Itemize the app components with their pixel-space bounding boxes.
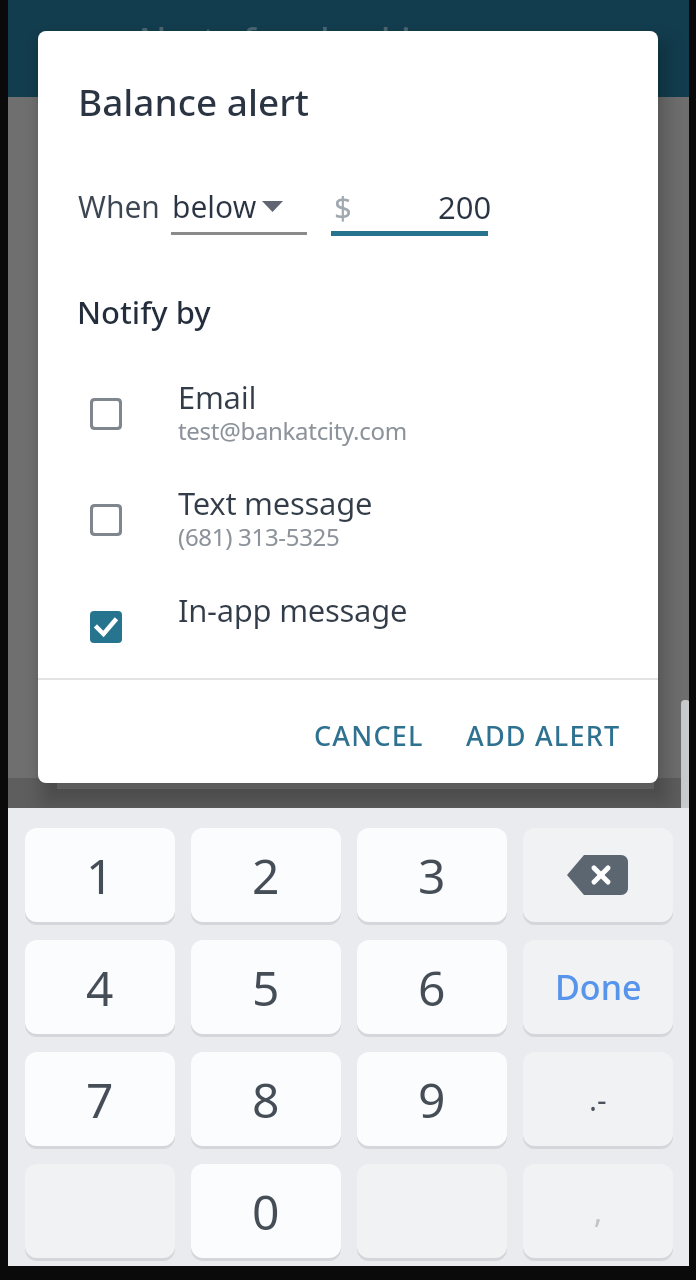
button[interactable]: In-app message bbox=[78, 597, 638, 687]
staticText: 5 bbox=[252, 955, 280, 1020]
staticText: test@bankatcity.com bbox=[178, 414, 407, 447]
button[interactable]: $ bbox=[331, 171, 488, 231]
staticText: 7 bbox=[86, 1067, 114, 1132]
button[interactable]: CANCEL bbox=[293, 713, 445, 757]
button[interactable]: 1 bbox=[25, 828, 175, 922]
staticText: Email bbox=[178, 376, 257, 418]
staticText: (681) 313-5325 bbox=[178, 520, 340, 553]
button[interactable]: .- bbox=[523, 1052, 673, 1146]
button[interactable]: Email bbox=[78, 384, 638, 474]
staticText: ADD ALERT bbox=[466, 717, 621, 754]
button[interactable]: Done bbox=[523, 940, 673, 1034]
staticText: Notify by bbox=[77, 291, 211, 333]
staticText: 3 bbox=[418, 843, 446, 908]
button[interactable]: below bbox=[166, 171, 316, 233]
staticText: In-app message bbox=[178, 589, 408, 631]
staticText: $ bbox=[334, 186, 352, 228]
button[interactable]: 2 bbox=[191, 828, 341, 922]
button[interactable]: 9 bbox=[357, 1052, 507, 1146]
button[interactable]: 7 bbox=[25, 1052, 175, 1146]
staticText: 8 bbox=[252, 1067, 280, 1132]
staticText: Done bbox=[555, 964, 642, 1010]
button[interactable]: ADD ALERT bbox=[443, 713, 643, 757]
button[interactable]: 4 bbox=[25, 940, 175, 1034]
staticText: Text message bbox=[178, 482, 373, 524]
button[interactable]: Text message bbox=[78, 490, 638, 580]
staticText: 9 bbox=[418, 1067, 446, 1132]
staticText: 2 bbox=[252, 843, 280, 908]
staticText: Balance alert bbox=[78, 76, 309, 126]
button[interactable]: 0 bbox=[191, 1164, 341, 1258]
button[interactable]: 8 bbox=[191, 1052, 341, 1146]
staticText: 200 bbox=[438, 186, 492, 228]
staticText: below bbox=[172, 186, 257, 227]
staticText: When bbox=[78, 186, 160, 227]
staticText: 1 bbox=[86, 843, 114, 908]
button[interactable] bbox=[523, 828, 673, 922]
staticText: , bbox=[594, 1191, 603, 1232]
button[interactable]: 3 bbox=[357, 828, 507, 922]
button[interactable]: 6 bbox=[357, 940, 507, 1034]
staticText: 0 bbox=[252, 1179, 280, 1244]
staticText: 4 bbox=[86, 955, 114, 1020]
staticText: CANCEL bbox=[314, 717, 424, 754]
button[interactable]: 5 bbox=[191, 940, 341, 1034]
staticText: 6 bbox=[418, 955, 446, 1020]
staticText: Alerts for checking bbox=[133, 16, 456, 65]
staticText: .- bbox=[589, 1079, 607, 1120]
